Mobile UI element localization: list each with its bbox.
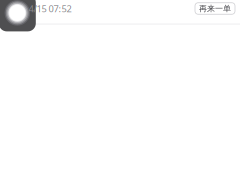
staticText: 再来一单	[199, 4, 231, 13]
staticText: 4/15 07:52	[28, 2, 71, 15]
button[interactable]: 4/15 07:52	[0, 0, 190, 23]
button[interactable]: 再来一单	[195, 3, 235, 14]
